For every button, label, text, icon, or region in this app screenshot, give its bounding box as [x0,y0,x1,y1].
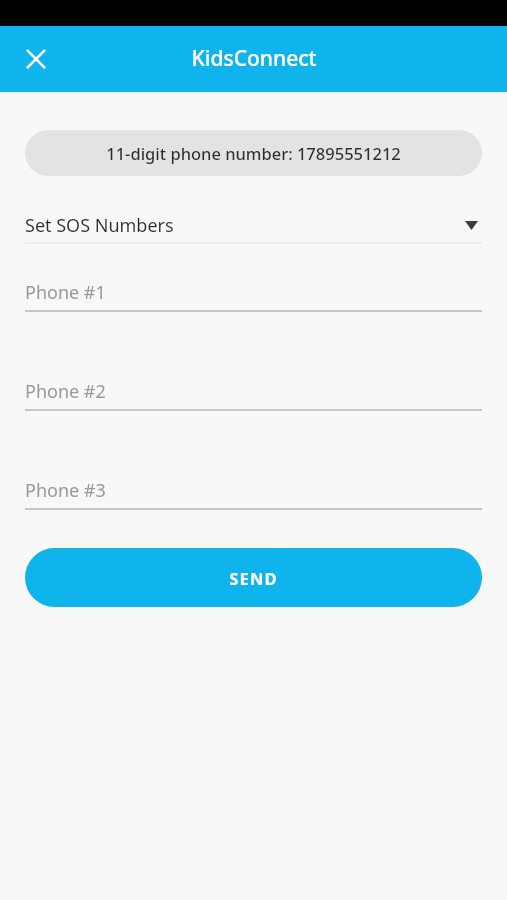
staticText: Phone #3 [25,478,106,503]
staticText: Phone #2 [25,379,106,404]
button[interactable]: 11-digit phone number: 17895551212 [25,130,482,176]
button[interactable]: Set SOS Numbers [25,208,482,244]
staticText: Set SOS Numbers [25,213,174,238]
staticText: KidsConnect [191,44,317,73]
button[interactable]: Phone #1 [25,275,482,312]
button[interactable]: Phone #3 [25,473,482,510]
staticText: 11-digit phone number: 17895551212 [106,142,401,164]
button[interactable]: Phone #2 [25,374,482,411]
button[interactable]: SEND [25,548,482,607]
button[interactable]: Close [14,37,58,81]
staticText: Phone #1 [25,280,106,305]
staticText: SEND [229,567,278,589]
